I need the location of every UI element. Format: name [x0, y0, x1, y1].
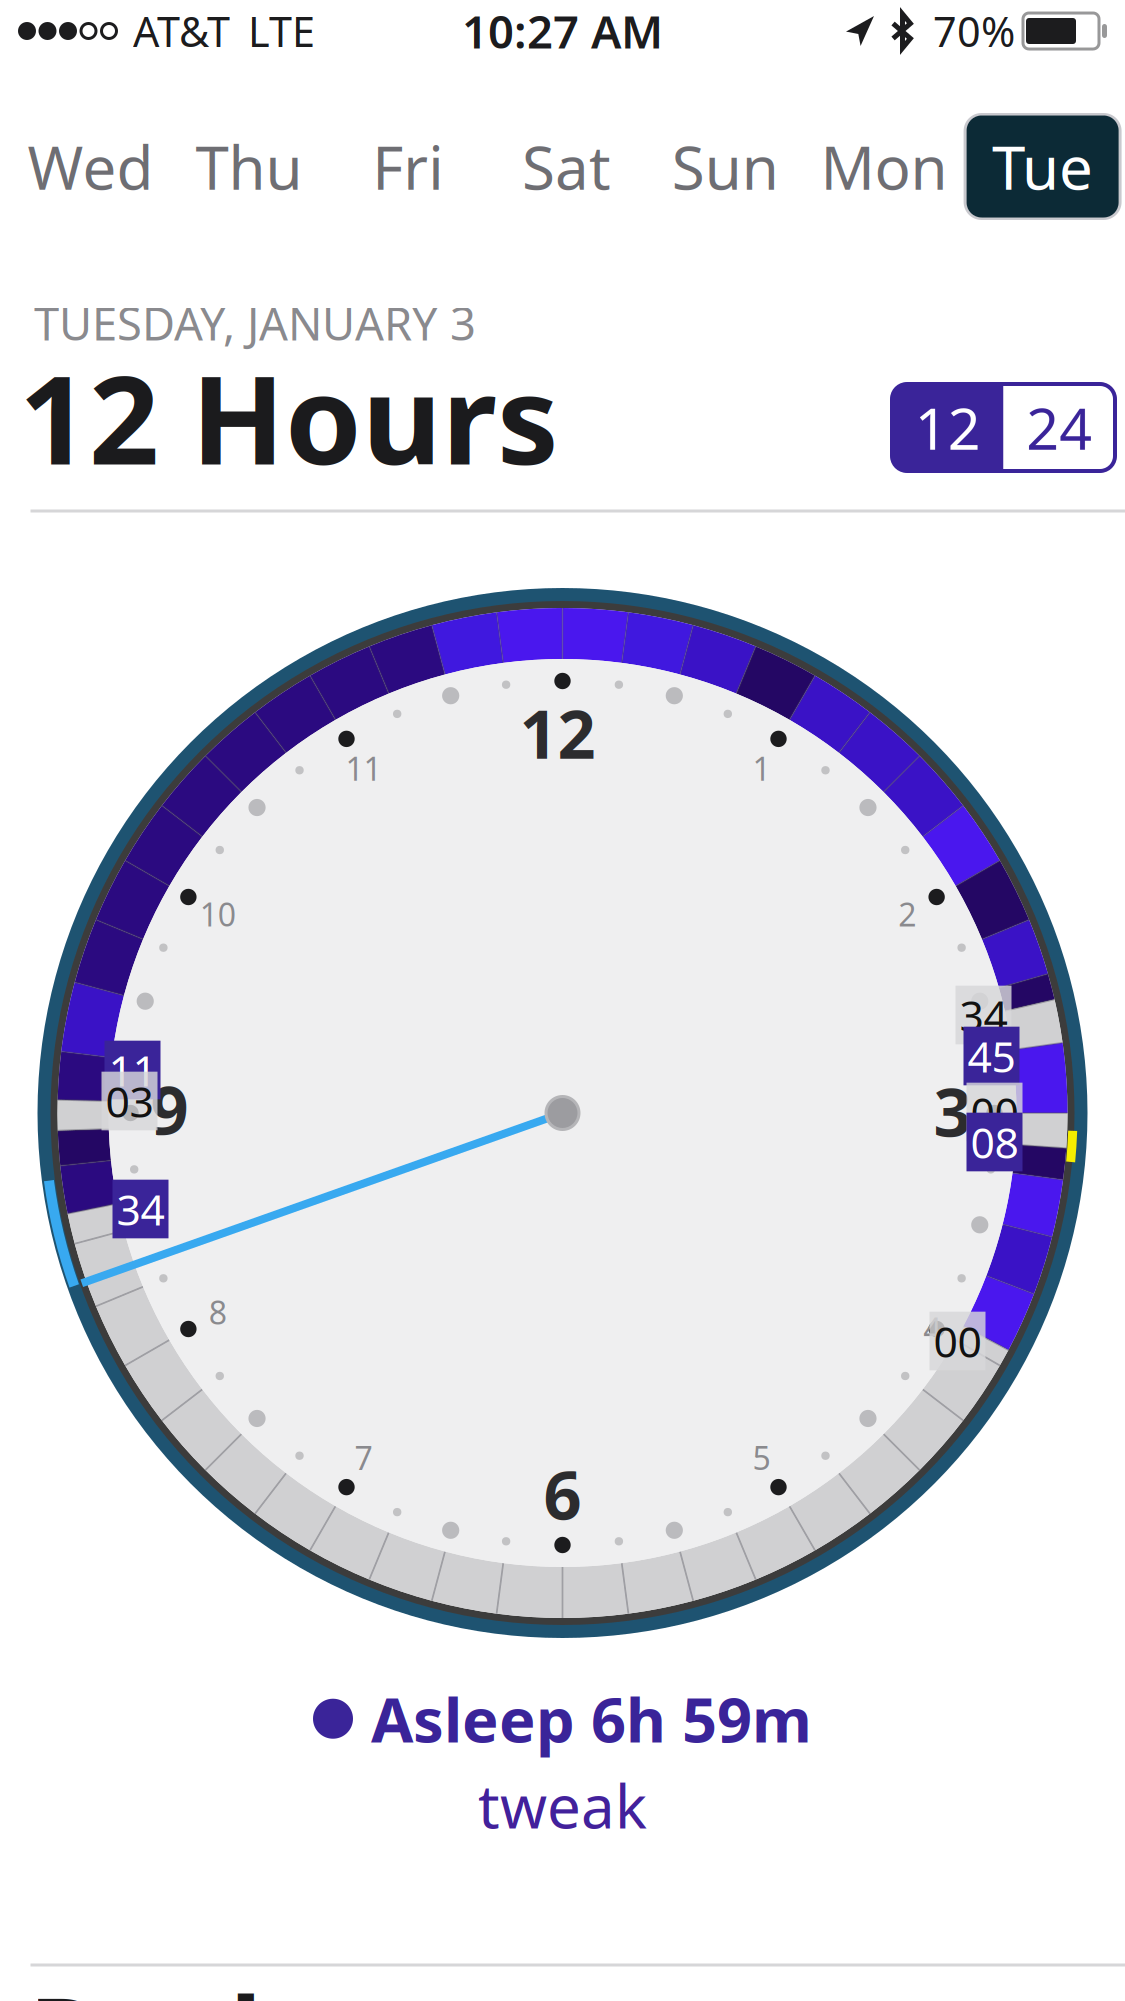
button[interactable]: 12: [892, 384, 1115, 471]
staticText: 12: [915, 389, 981, 465]
button[interactable]: Fri: [328, 115, 487, 217]
staticText: 12: [519, 689, 595, 777]
staticText: Asleep 6h 59m: [371, 1678, 812, 1759]
staticText: Wed: [27, 127, 153, 206]
staticText: 03: [105, 1073, 153, 1129]
staticText: 11: [345, 747, 381, 790]
staticText: Tue: [992, 127, 1093, 206]
staticText: Mon: [820, 127, 947, 206]
staticText: tweak: [478, 1765, 647, 1845]
staticText: 10:27 AM: [462, 1, 663, 61]
staticText: 4: [923, 1308, 941, 1350]
button[interactable]: Asleep 6h 59m: [0, 1678, 1125, 1845]
staticText: AT&T: [133, 4, 230, 58]
staticText: 34: [959, 987, 1007, 1043]
staticText: Fri: [372, 127, 443, 206]
staticText: 24: [1026, 389, 1092, 465]
staticText: 2: [898, 893, 916, 935]
staticText: Sat: [522, 127, 611, 206]
staticText: 12 Hours: [19, 336, 559, 498]
staticText: 7: [354, 1436, 372, 1479]
staticText: 00: [933, 1313, 981, 1369]
staticText: Sun: [672, 127, 779, 206]
button[interactable]: Sun: [646, 115, 804, 217]
staticText: TUESDAY, JANUARY 3: [34, 293, 476, 353]
staticText: Thu: [196, 127, 303, 206]
staticText: 5: [752, 1436, 770, 1479]
button[interactable]: Sat: [487, 115, 646, 217]
button[interactable]: Wed: [11, 115, 170, 217]
staticText: 08: [970, 1114, 1018, 1170]
staticText: LTE: [248, 4, 315, 58]
button[interactable]: Thu: [170, 115, 328, 217]
staticText: 34: [116, 1181, 164, 1237]
staticText: 45: [967, 1028, 1015, 1084]
staticText: 8: [209, 1291, 227, 1333]
staticText: 3: [933, 1067, 971, 1155]
staticText: 6: [543, 1450, 581, 1538]
staticText: 00: [970, 1084, 1018, 1140]
staticText: 11: [108, 1042, 156, 1098]
staticText: 1: [752, 747, 770, 790]
staticText: 9: [150, 1065, 188, 1153]
button[interactable]: Mon: [804, 115, 963, 217]
staticText: Replay: [29, 1962, 387, 2001]
staticText: 70%: [933, 4, 1015, 58]
button[interactable]: Tue: [963, 113, 1122, 220]
staticText: 10: [200, 893, 236, 935]
